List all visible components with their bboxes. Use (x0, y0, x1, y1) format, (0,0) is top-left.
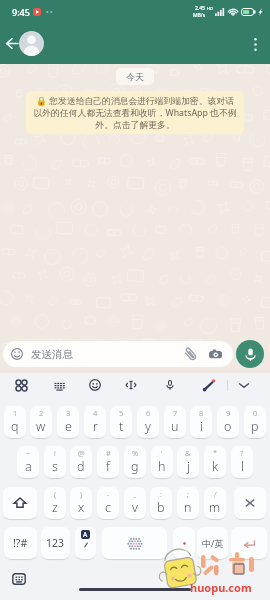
button[interactable]: Voice message (236, 340, 264, 368)
staticText: ) (80, 489, 83, 499)
staticText: g (131, 458, 139, 475)
button[interactable]: 今天 (116, 68, 154, 85)
staticText: ! (54, 448, 56, 458)
button[interactable]: Collapse keyboard (234, 375, 254, 395)
button[interactable]: !?# (4, 527, 37, 559)
button[interactable]: Emoji (85, 375, 105, 395)
staticText: u (171, 418, 179, 435)
button[interactable]: 0 (244, 406, 266, 438)
staticText: ~ (26, 448, 31, 458)
button[interactable]: ) (70, 487, 92, 519)
staticText: q (11, 418, 19, 435)
button[interactable]: Backspace (234, 487, 266, 519)
button[interactable]: 8 (190, 406, 212, 438)
button[interactable]: 中/英 (197, 527, 228, 559)
staticText: A (83, 530, 88, 539)
button[interactable]: Shift (3, 487, 37, 519)
staticText: # (106, 448, 111, 458)
staticText: 7 (173, 408, 178, 418)
button[interactable]: Back (1, 32, 23, 54)
staticText: 今天 (126, 71, 144, 82)
staticText: - (107, 489, 110, 499)
staticText: huopu.com (190, 580, 252, 595)
staticText: & (185, 448, 191, 458)
button[interactable]: Contact avatar (19, 31, 44, 56)
staticText: % (132, 448, 139, 458)
button[interactable]: * (204, 446, 226, 478)
staticText: n (184, 499, 192, 516)
staticText: 9 (226, 408, 231, 418)
button[interactable]: ? (231, 446, 253, 478)
button[interactable]: More options (244, 33, 266, 55)
button[interactable]: Space (102, 527, 167, 559)
button[interactable]: Text editing (121, 375, 141, 395)
staticText: h (158, 458, 166, 475)
button[interactable]: ' (151, 446, 173, 478)
staticText: @ (78, 448, 85, 458)
button[interactable]: : (150, 487, 172, 519)
staticText: d (77, 458, 85, 475)
staticText: f (106, 458, 110, 475)
button[interactable]: 7 (164, 406, 186, 438)
button[interactable]: 6 (137, 406, 159, 438)
button[interactable]: _ (124, 487, 146, 519)
staticText: 3 (66, 408, 71, 418)
button[interactable]: % (124, 446, 146, 478)
staticText: 6 (146, 408, 151, 418)
staticText: r (93, 418, 98, 435)
button[interactable]: Keyboard (49, 375, 69, 395)
staticText: k (212, 458, 219, 475)
other: Attach (183, 347, 198, 362)
staticText: j (187, 458, 190, 475)
button[interactable]: 1 (4, 406, 26, 438)
button[interactable]: 5 (110, 406, 132, 438)
staticText: o (224, 418, 232, 435)
button[interactable]: 🔒 您发送给自己的消息会进行端到端加密。该对话以外的任何人都无法查看和收听，Wh… (26, 91, 244, 134)
button[interactable]: Input language (75, 527, 96, 559)
button[interactable]: ( (44, 487, 66, 519)
staticText: 123 (46, 536, 65, 550)
button[interactable]: 发送消息 (3, 341, 233, 367)
staticText: a (25, 458, 32, 475)
button[interactable]: # (97, 446, 119, 478)
staticText: 1 (13, 408, 18, 418)
other: Camera (209, 348, 222, 361)
staticText: 中/英 (202, 537, 224, 549)
button[interactable]: Keyboard layouts (11, 375, 31, 395)
button[interactable]: Switch input method (11, 571, 27, 587)
staticText: ; (187, 489, 189, 499)
button[interactable]: ~ (17, 446, 39, 478)
button[interactable]: / (204, 487, 226, 519)
staticText: e (65, 418, 72, 435)
staticText: 8 (199, 408, 204, 418)
staticText: x (78, 499, 85, 516)
staticText: b (157, 499, 165, 516)
button[interactable]: 4 (84, 406, 106, 438)
staticText: 2.45 (195, 5, 205, 12)
button[interactable]: Punctuation (173, 527, 195, 559)
button[interactable]: - (97, 487, 119, 519)
staticText: 2 (39, 408, 44, 418)
button[interactable]: 9 (217, 406, 239, 438)
staticText: !?# (13, 536, 28, 550)
button[interactable]: & (177, 446, 199, 478)
staticText: y (145, 418, 151, 435)
staticText: v (132, 499, 138, 516)
button[interactable]: 3 (57, 406, 79, 438)
staticText: ( (54, 489, 57, 499)
staticText: c (105, 499, 111, 516)
button[interactable]: @ (70, 446, 92, 478)
button[interactable]: 2 (30, 406, 52, 438)
button[interactable]: 123 (41, 527, 70, 559)
button[interactable]: Enter (231, 527, 267, 559)
button[interactable]: Theme (198, 375, 218, 395)
staticText: HD (207, 6, 213, 11)
staticText: l (241, 458, 244, 475)
button[interactable]: Voice input (160, 375, 180, 395)
staticText: _ (133, 489, 137, 499)
staticText: 9:45 (12, 6, 30, 18)
staticText: ' (161, 448, 163, 458)
button[interactable]: ! (44, 446, 66, 478)
button[interactable]: ; (177, 487, 199, 519)
staticText: : (160, 489, 162, 499)
